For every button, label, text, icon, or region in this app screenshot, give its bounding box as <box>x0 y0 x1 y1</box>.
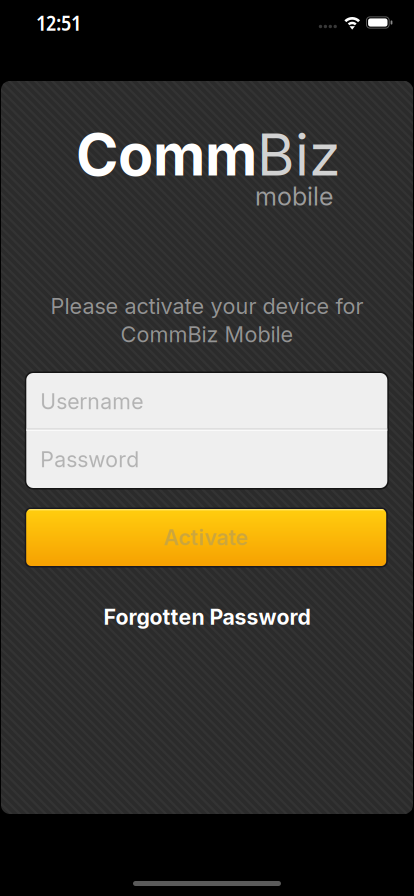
staticText: Biz <box>257 120 341 189</box>
button[interactable]: Activate <box>25 507 388 567</box>
staticText: Username <box>40 389 143 414</box>
button[interactable]: Password <box>26 431 387 488</box>
staticText: Comm <box>76 120 257 189</box>
staticText: Password <box>40 447 139 472</box>
staticText: Activate <box>164 525 249 550</box>
button[interactable]: Username <box>26 373 387 430</box>
staticText: Forgotten Password <box>103 604 310 630</box>
button[interactable]: Forgotten Password <box>1 602 413 632</box>
staticText: mobile <box>255 181 333 212</box>
staticText: Please activate your device for <box>50 293 363 319</box>
staticText: 12:51 <box>36 8 81 37</box>
staticText: CommBiz Mobile <box>120 321 293 348</box>
